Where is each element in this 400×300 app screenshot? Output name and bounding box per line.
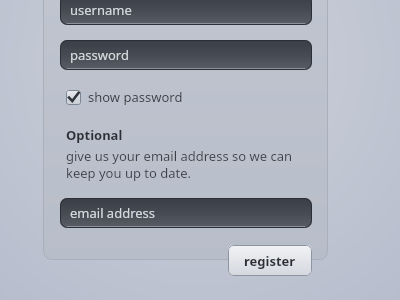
staticText: Optional <box>66 126 123 144</box>
button[interactable]: register <box>228 245 312 276</box>
button[interactable]: email address <box>60 198 312 228</box>
staticText: register <box>244 252 296 270</box>
staticText: password <box>70 46 129 64</box>
staticText: show password <box>88 88 183 106</box>
staticText: give us your email address so we can kee… <box>66 147 292 182</box>
button[interactable]: username <box>60 0 312 25</box>
button[interactable]: password <box>60 40 312 70</box>
button[interactable]: show password <box>66 86 183 108</box>
staticText: username <box>70 1 132 19</box>
staticText: email address <box>70 204 156 222</box>
